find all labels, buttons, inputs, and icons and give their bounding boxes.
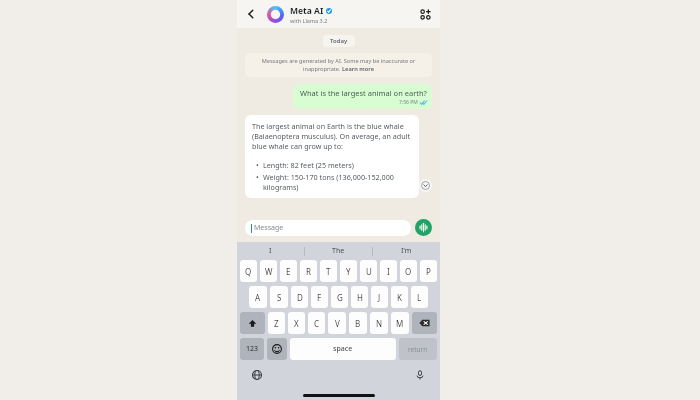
staticText: Meta AI — [290, 5, 324, 17]
staticText: R — [306, 266, 311, 277]
button[interactable]: D — [291, 286, 308, 308]
button[interactable]: A — [249, 286, 267, 308]
button[interactable]: The largest animal on Earth is the blue … — [245, 115, 419, 198]
staticText: Length: 82 feet (25 meters) — [263, 160, 354, 170]
staticText: L — [417, 292, 422, 303]
staticText: J — [378, 292, 381, 303]
button[interactable]: Shift — [240, 312, 265, 334]
staticText: I — [387, 266, 390, 277]
button[interactable]: return — [399, 338, 437, 360]
button[interactable]: R — [300, 260, 317, 282]
staticText: space — [333, 344, 353, 354]
staticText: with Llama 3.2 — [290, 17, 328, 24]
button[interactable]: T — [320, 260, 337, 282]
button[interactable]: space — [290, 338, 396, 360]
button[interactable]: W — [260, 260, 277, 282]
staticText: 123 — [246, 344, 259, 354]
staticText: E — [286, 266, 291, 277]
button[interactable]: Expand — [419, 179, 432, 192]
staticText: V — [335, 318, 340, 329]
button[interactable]: X — [288, 312, 305, 334]
button[interactable]: J — [371, 286, 388, 308]
button[interactable]: Voice message — [415, 219, 432, 236]
button[interactable]: P — [420, 260, 437, 282]
button[interactable]: Emoji — [267, 338, 287, 360]
staticText: D — [297, 292, 303, 303]
staticText: X — [294, 318, 299, 329]
button[interactable]: O — [400, 260, 417, 282]
button[interactable]: N — [370, 312, 388, 334]
button[interactable]: I — [237, 242, 304, 260]
staticText: • — [256, 172, 259, 182]
staticText: 7:56 PM — [399, 99, 418, 106]
button[interactable]: Back — [243, 6, 259, 22]
button[interactable]: 123 — [240, 338, 264, 360]
button[interactable]: Y — [340, 260, 357, 282]
staticText: P — [426, 266, 431, 277]
staticText: • — [256, 160, 259, 170]
button[interactable]: G — [331, 286, 348, 308]
staticText: H — [357, 292, 363, 303]
button[interactable]: L — [411, 286, 428, 308]
button[interactable]: S — [270, 286, 288, 308]
staticText: Y — [346, 266, 351, 277]
button[interactable]: C — [308, 312, 325, 334]
staticText: C — [314, 318, 320, 329]
staticText: What is the largest animal on earth? — [300, 88, 427, 98]
button[interactable]: B — [349, 312, 367, 334]
staticText: Message — [254, 223, 284, 233]
button[interactable]: K — [391, 286, 408, 308]
button[interactable]: I'm — [373, 242, 440, 260]
button[interactable]: U — [360, 260, 377, 282]
button[interactable]: Message — [245, 220, 411, 236]
button[interactable]: V — [328, 312, 346, 334]
staticText: The — [332, 246, 345, 256]
button[interactable]: Q — [240, 260, 257, 282]
button[interactable]: F — [311, 286, 328, 308]
button[interactable]: Z — [268, 312, 285, 334]
staticText: K — [397, 292, 402, 303]
staticText: B — [355, 318, 361, 329]
button[interactable]: The — [305, 242, 372, 260]
staticText: G — [337, 292, 343, 303]
staticText: U — [366, 266, 372, 277]
button[interactable]: Change language — [249, 367, 265, 383]
staticText: return — [408, 345, 428, 354]
staticText: T — [326, 266, 331, 277]
staticText: I — [269, 246, 272, 256]
staticText: N — [376, 318, 383, 329]
staticText: The largest animal on Earth is the blue … — [252, 121, 412, 151]
staticText: S — [277, 292, 282, 303]
button[interactable]: E — [280, 260, 297, 282]
staticText: A — [255, 292, 261, 303]
staticText: Weight: 150-170 tons (136,000-152,000 ki… — [263, 172, 412, 192]
staticText: F — [317, 292, 322, 303]
staticText: M — [396, 318, 404, 329]
button[interactable]: Backspace — [412, 312, 437, 334]
button[interactable]: Dictation — [412, 367, 428, 383]
staticText: Q — [245, 266, 252, 277]
staticText: I'm — [401, 246, 412, 256]
staticText: Messages are generated by AI. Some may b… — [253, 57, 424, 73]
staticText: W — [265, 266, 273, 277]
staticText: Z — [274, 318, 279, 329]
button[interactable]: M — [391, 312, 409, 334]
button[interactable]: What is the largest animal on earth? — [293, 84, 432, 109]
button[interactable]: Add shortcut — [416, 5, 434, 23]
button[interactable]: H — [351, 286, 368, 308]
button[interactable]: I — [380, 260, 397, 282]
staticText: Today — [330, 37, 348, 45]
staticText: O — [405, 266, 412, 277]
